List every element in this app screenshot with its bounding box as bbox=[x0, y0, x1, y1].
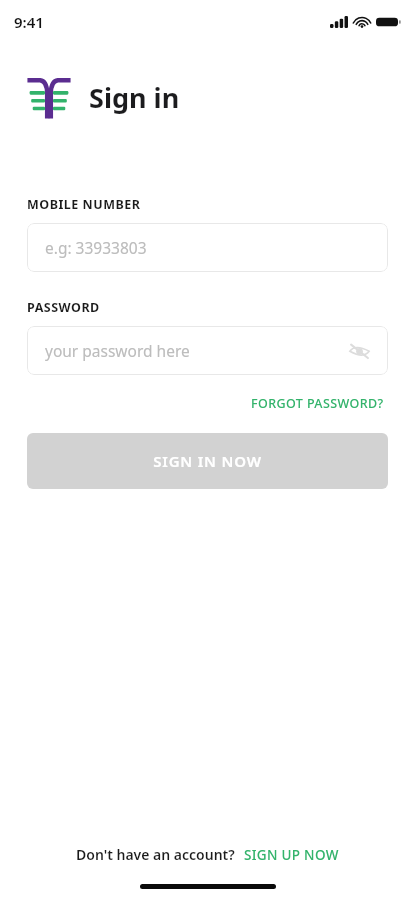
staticText: 9:41 bbox=[14, 12, 44, 32]
staticText: Don't have an account? bbox=[76, 845, 235, 864]
staticText: e.g: 33933803 bbox=[45, 237, 147, 258]
button[interactable]: SIGN IN NOW bbox=[27, 433, 388, 489]
button[interactable]: SIGN UP NOW bbox=[244, 846, 339, 864]
staticText: Sign in bbox=[89, 79, 180, 116]
button[interactable]: FORGOT PASSWORD? bbox=[247, 391, 388, 416]
staticText: PASSWORD bbox=[27, 299, 100, 316]
button[interactable]: your password here bbox=[27, 326, 388, 375]
button[interactable]: Show password bbox=[344, 336, 374, 366]
staticText: your password here bbox=[45, 340, 190, 361]
staticText: FORGOT PASSWORD? bbox=[251, 395, 384, 412]
staticText: MOBILE NUMBER bbox=[27, 196, 141, 213]
staticText: SIGN UP NOW bbox=[244, 846, 339, 864]
staticText: SIGN IN NOW bbox=[153, 451, 262, 471]
button[interactable]: e.g: 33933803 bbox=[27, 223, 388, 272]
